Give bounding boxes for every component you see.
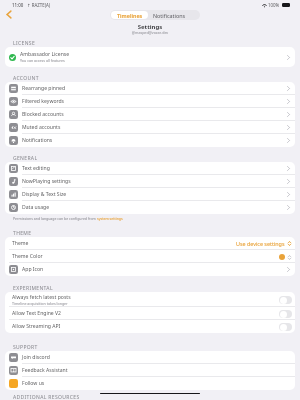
staticText: Settings <box>0 23 300 31</box>
staticText: Text editing <box>22 165 50 172</box>
staticText: @masped@vozze.dev <box>0 30 300 35</box>
staticText: Filtered keywords <box>22 98 65 105</box>
staticText: Allow Text Engine V2 <box>12 310 62 317</box>
button[interactable]: Join discord <box>5 351 295 364</box>
button[interactable]: Always fetch latest posts <box>5 292 295 307</box>
staticText: Permissions and language can be configur… <box>13 216 97 221</box>
staticText: THEME <box>13 230 32 237</box>
staticText: Feedback Assistant <box>22 367 68 374</box>
button[interactable]: NowPlaying settings <box>5 175 295 188</box>
staticText: ADDITIONAL RESOURCES <box>13 394 80 400</box>
staticText: ↑ RAZTE(A) <box>27 2 51 8</box>
button[interactable]: Timelines <box>111 11 148 19</box>
staticText: Allow Streaming API <box>12 323 61 330</box>
button[interactable]: Rearrange pinned <box>5 82 295 95</box>
staticText: You can access all features <box>20 58 65 63</box>
staticText: App Icon <box>22 266 44 273</box>
button[interactable]: Ambassador License <box>5 47 295 67</box>
staticText: Use device settings <box>236 240 285 247</box>
staticText: 100% <box>268 2 280 8</box>
staticText: Always fetch latest posts <box>12 294 71 301</box>
button[interactable]: Feedback Assistant <box>5 364 295 377</box>
button[interactable]: Data usage <box>5 201 295 214</box>
button[interactable]: system settings <box>97 216 123 221</box>
staticText: EXPERIMENTAL <box>13 285 53 292</box>
staticText: Notifications <box>153 12 186 19</box>
button[interactable]: Theme <box>5 237 295 250</box>
button[interactable]: Theme Color <box>5 250 295 263</box>
staticText: Follow us <box>22 380 45 387</box>
staticText: LICENSE <box>13 40 36 47</box>
staticText: Data usage <box>22 204 50 211</box>
staticText: Join discord <box>22 354 50 361</box>
button[interactable]: App Icon <box>5 263 295 276</box>
staticText: Muted accounts <box>22 124 61 131</box>
staticText: Theme Color <box>12 253 43 260</box>
staticText: Ambassador License <box>20 51 70 58</box>
button[interactable]: Text editing <box>5 162 295 175</box>
staticText: Blocked accounts <box>22 111 64 118</box>
staticText: ACCOUNT <box>13 75 39 82</box>
button[interactable]: Toggle <box>279 296 292 304</box>
button[interactable]: Toggle <box>279 310 292 318</box>
button[interactable]: Allow Streaming API <box>5 320 295 333</box>
button[interactable]: Allow Text Engine V2 <box>5 307 295 320</box>
staticText: SUPPORT <box>13 344 38 351</box>
button[interactable]: Filtered keywords <box>5 95 295 108</box>
staticText: NowPlaying settings <box>22 178 71 185</box>
button[interactable]: Back <box>3 9 15 20</box>
button[interactable]: Muted accounts <box>5 121 295 134</box>
button[interactable]: Notifications <box>148 11 199 19</box>
staticText: 11:00 <box>12 2 24 8</box>
button[interactable]: Follow us <box>5 377 295 390</box>
button[interactable]: Notifications <box>5 134 295 147</box>
staticText: Rearrange pinned <box>22 85 66 92</box>
staticText: GENERAL <box>13 155 38 162</box>
staticText: Timelines <box>117 12 143 19</box>
staticText: Notifications <box>22 137 53 144</box>
staticText: Timeline acquisition takes longer <box>12 301 68 306</box>
staticText: Theme <box>12 240 29 247</box>
button[interactable]: Display & Text Size <box>5 188 295 201</box>
button[interactable]: Toggle <box>279 323 292 331</box>
staticText: Display & Text Size <box>22 191 67 198</box>
button[interactable]: Blocked accounts <box>5 108 295 121</box>
